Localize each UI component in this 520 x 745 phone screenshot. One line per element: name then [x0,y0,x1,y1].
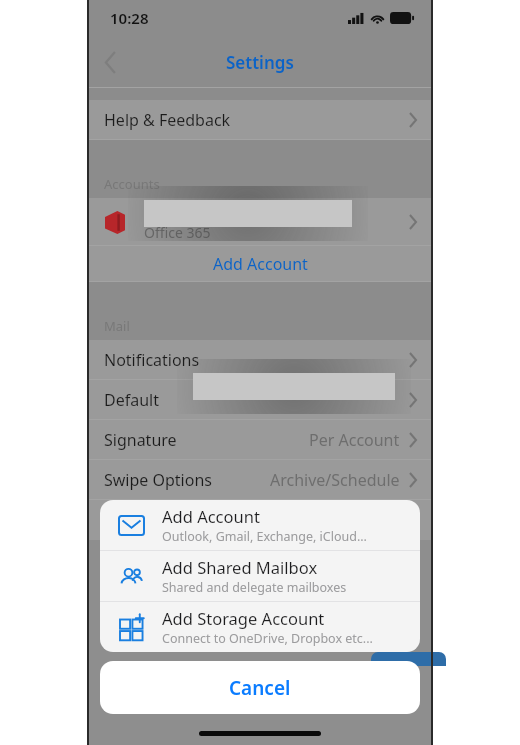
staticText: Outlook, Gmail, Exchange, iCloud... [162,528,367,545]
button[interactable]: Signature [88,420,432,460]
staticText: Default [104,389,159,411]
staticText: Add Storage Account [162,607,325,629]
staticText: Shared and delegate mailboxes [162,579,347,596]
staticText: Mail [104,317,130,335]
staticText: Cancel [229,675,291,701]
staticText: Office 365 [144,223,211,242]
button[interactable]: Swipe Options [88,460,432,500]
button[interactable]: Add Account [100,500,420,550]
button[interactable]: Office 365 [88,198,432,246]
button[interactable]: Default [88,380,432,420]
staticText: Signature [104,429,177,451]
staticText: Accounts [104,175,160,193]
button[interactable]: Notifications [88,340,432,380]
staticText: Swipe Options [104,469,212,491]
button[interactable]: Back [88,36,132,88]
staticText: Add Account [162,505,260,527]
button[interactable]: Help & Feedback [88,100,432,140]
staticText: Settings [226,51,294,74]
staticText: Notifications [104,349,200,371]
button[interactable]: Add Storage Account [100,602,420,652]
button[interactable]: Add Shared Mailbox [100,551,420,601]
staticText: Help & Feedback [104,109,231,131]
staticText: 10:28 [110,8,149,28]
button[interactable]: Cancel [100,661,420,714]
button[interactable]: Add Account [88,246,432,282]
staticText: Add Shared Mailbox [162,556,318,578]
staticText: Add Account [213,253,308,275]
staticText: Archive/Schedule [270,469,400,491]
staticText: Per Account [309,429,400,451]
staticText: Connect to OneDrive, Dropbox etc... [162,630,373,647]
